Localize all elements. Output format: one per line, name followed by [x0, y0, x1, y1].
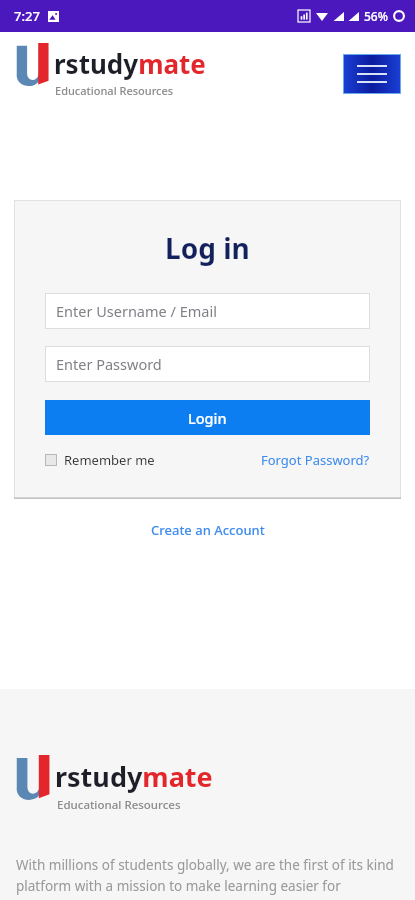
- button[interactable]: Enter Username / Email: [45, 293, 370, 329]
- button[interactable]: Remember me: [45, 451, 155, 469]
- staticText: 7:27: [14, 7, 40, 25]
- staticText: Create an Account: [151, 521, 265, 539]
- button[interactable]: Login: [45, 400, 370, 435]
- staticText: rstudymate: [55, 758, 213, 795]
- staticText: Educational Resources: [57, 797, 181, 813]
- staticText: Enter Username / Email: [56, 301, 217, 321]
- button[interactable]: Open menu: [343, 54, 401, 94]
- staticText: 56%: [364, 8, 388, 24]
- staticText: Login: [188, 408, 227, 428]
- staticText: Log in: [165, 229, 250, 267]
- staticText: Enter Password: [56, 354, 162, 374]
- staticText: rstudymate: [54, 46, 206, 81]
- staticText: With millions of students globally, we a…: [16, 856, 399, 900]
- button[interactable]: Enter Password: [45, 346, 370, 382]
- staticText: Forgot Password?: [261, 451, 370, 469]
- staticText: Remember me: [64, 451, 155, 469]
- staticText: Educational Resources: [55, 83, 174, 98]
- button[interactable]: Create an Account: [145, 515, 271, 545]
- button[interactable]: Forgot Password?: [261, 451, 370, 469]
